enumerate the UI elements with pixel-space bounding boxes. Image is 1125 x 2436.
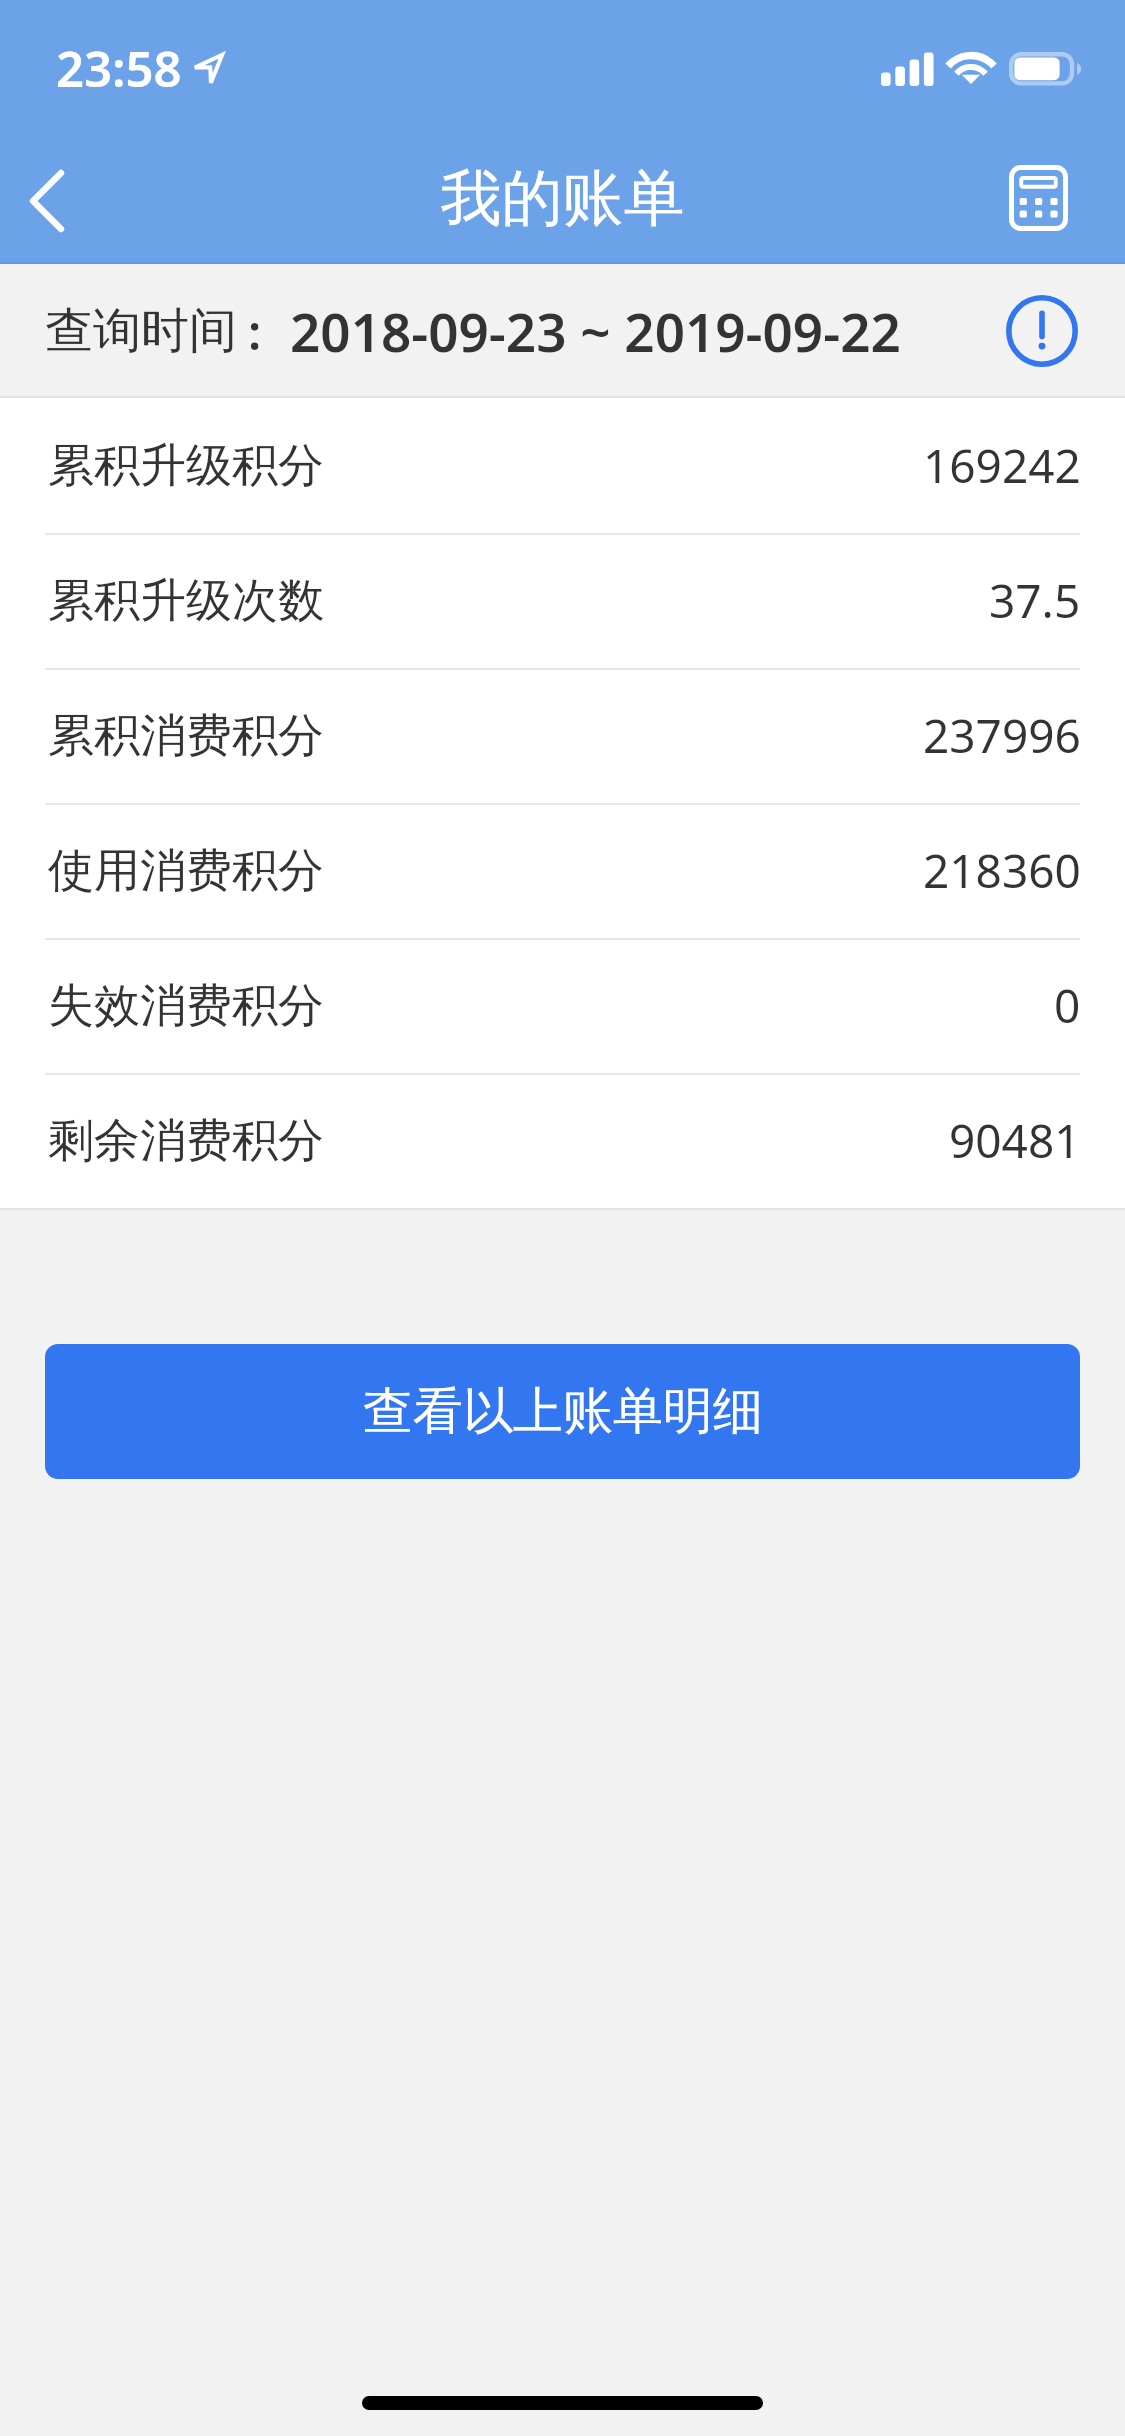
staticText: 2018-09-23 ~ 2019-09-22: [290, 295, 901, 367]
button[interactable]: 返回: [0, 132, 132, 264]
staticText: :: [248, 299, 262, 364]
button[interactable]: 查看以上账单明细: [45, 1344, 1080, 1479]
staticText: 0: [1054, 974, 1081, 1037]
staticText: 查询时间: [45, 301, 237, 361]
button[interactable]: 累积消费积分: [0, 668, 1125, 803]
staticText: 累积升级积分: [48, 437, 324, 495]
staticText: 37.5: [989, 569, 1081, 632]
staticText: 我的账单: [0, 160, 1125, 237]
staticText: 218360: [923, 839, 1081, 902]
staticText: 查看以上账单明细: [363, 1380, 763, 1443]
button[interactable]: 累积升级积分: [0, 398, 1125, 533]
staticText: 237996: [923, 704, 1081, 767]
button[interactable]: 计算器: [972, 132, 1104, 264]
staticText: 使用消费积分: [48, 842, 324, 900]
staticText: 累积升级次数: [48, 572, 324, 630]
button[interactable]: 剩余消费积分: [0, 1073, 1125, 1208]
staticText: 失效消费积分: [48, 977, 324, 1035]
staticText: 累积消费积分: [48, 707, 324, 765]
button[interactable]: 使用消费积分: [0, 803, 1125, 938]
button[interactable]: 累积升级次数: [0, 533, 1125, 668]
staticText: 90481: [949, 1109, 1081, 1172]
staticText: 23:58: [56, 35, 182, 102]
button[interactable]: 失效消费积分: [0, 938, 1125, 1073]
button[interactable]: 说明: [997, 286, 1087, 376]
staticText: 剩余消费积分: [48, 1112, 324, 1170]
staticText: 169242: [923, 434, 1081, 497]
